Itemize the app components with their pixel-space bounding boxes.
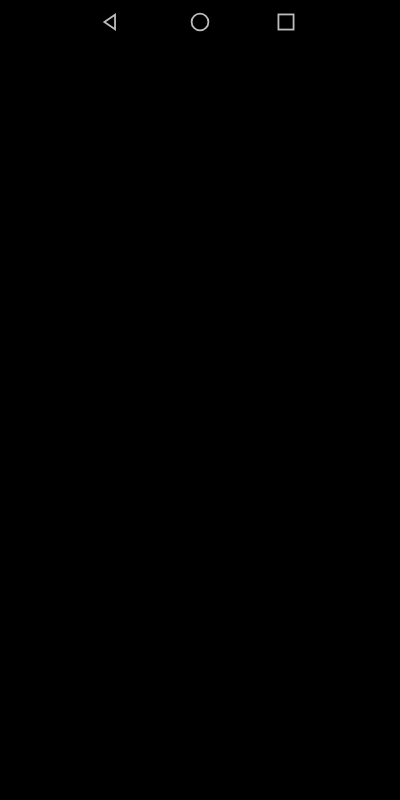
button[interactable]: Back: [96, 8, 124, 36]
button[interactable]: Home: [186, 8, 214, 36]
staticText: 74%: [284, 3, 308, 19]
button[interactable]: Recent apps: [272, 8, 300, 36]
